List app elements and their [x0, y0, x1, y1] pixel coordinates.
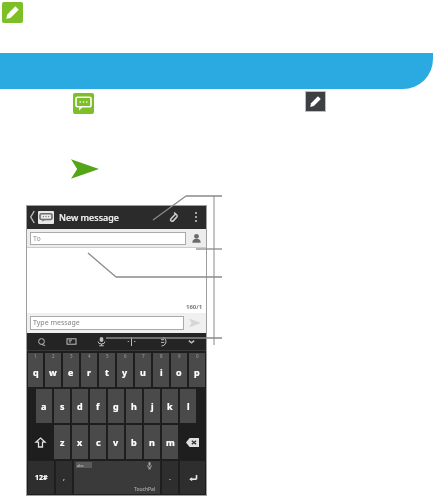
staticText: w: [49, 366, 57, 378]
staticText: f: [96, 400, 100, 412]
staticText: b: [131, 436, 137, 448]
button[interactable]: Keyboard tool 3: [116, 333, 146, 350]
staticText: x: [77, 436, 83, 448]
button[interactable]: s: [54, 389, 70, 423]
staticText: 9: [178, 353, 181, 359]
button[interactable]: 0: [189, 353, 205, 387]
button[interactable]: abc: [74, 461, 160, 494]
button[interactable]: Keyboard tool 0: [27, 333, 56, 350]
staticText: o: [176, 366, 182, 378]
staticText: 160/1: [186, 303, 203, 311]
button[interactable]: 2: [45, 353, 61, 387]
staticText: 3: [70, 353, 73, 359]
button[interactable]: Keyboard tool 4: [146, 333, 176, 350]
staticText: 7: [142, 353, 145, 359]
button[interactable]: b: [126, 425, 142, 459]
staticText: s: [60, 400, 65, 412]
staticText: 1: [34, 353, 37, 359]
button[interactable]: ,: [56, 461, 72, 494]
button[interactable]: Messaging: [73, 93, 94, 114]
button[interactable]: 12#: [28, 461, 54, 494]
staticText: z: [60, 436, 65, 448]
staticText: t: [105, 366, 109, 378]
staticText: abc: [77, 463, 84, 468]
staticText: 6: [124, 353, 127, 359]
staticText: d: [77, 400, 83, 412]
button[interactable]: m: [162, 425, 178, 459]
button[interactable]: 4: [81, 353, 97, 387]
staticText: q: [33, 366, 39, 378]
button[interactable]: Keyboard tool 5: [176, 333, 206, 350]
button[interactable]: To: [33, 232, 186, 245]
button[interactable]: g: [108, 389, 124, 423]
staticText: a: [41, 400, 47, 412]
staticText: ,: [63, 473, 65, 483]
button[interactable]: x: [72, 425, 88, 459]
staticText: y: [122, 366, 128, 378]
button[interactable]: j: [144, 389, 160, 423]
staticText: u: [140, 366, 146, 378]
button[interactable]: 7: [135, 353, 151, 387]
staticText: i: [160, 366, 163, 378]
button[interactable]: c: [90, 425, 106, 459]
button[interactable]: Type message: [33, 316, 184, 330]
button[interactable]: More options: [190, 211, 202, 223]
staticText: 4: [88, 353, 91, 359]
staticText: 12#: [35, 473, 48, 483]
button[interactable]: Send: [187, 316, 203, 330]
button[interactable]: h: [126, 389, 142, 423]
staticText: Type message: [33, 318, 80, 328]
button[interactable]: Attach: [166, 210, 180, 224]
button[interactable]: Keyboard tool 2: [86, 333, 116, 350]
button[interactable]: f: [90, 389, 106, 423]
button[interactable]: 8: [153, 353, 169, 387]
button[interactable]: Send: [71, 158, 99, 180]
staticText: TouchPal: [134, 486, 156, 493]
button[interactable]: Backspace: [180, 425, 205, 459]
button[interactable]: Shift: [28, 425, 52, 459]
staticText: 2: [52, 353, 55, 359]
staticText: 0: [196, 353, 199, 359]
button[interactable]: k: [162, 389, 178, 423]
button[interactable]: New message: [306, 92, 325, 111]
staticText: h: [131, 400, 137, 412]
staticText: m: [166, 436, 175, 448]
staticText: l: [187, 400, 190, 412]
button[interactable]: 9: [171, 353, 187, 387]
staticText: To: [33, 234, 41, 244]
staticText: r: [87, 366, 92, 378]
staticText: .: [169, 473, 171, 483]
button[interactable]: Compose: [2, 2, 23, 23]
staticText: p: [194, 366, 200, 378]
staticText: e: [68, 366, 74, 378]
button[interactable]: 3: [63, 353, 79, 387]
staticText: n: [149, 436, 155, 448]
button[interactable]: a: [36, 389, 52, 423]
staticText: j: [151, 400, 154, 412]
staticText: g: [113, 400, 119, 412]
button[interactable]: 1: [28, 353, 43, 387]
staticText: c: [96, 436, 101, 448]
button[interactable]: 6: [117, 353, 133, 387]
button[interactable]: v: [108, 425, 124, 459]
button[interactable]: l: [180, 389, 196, 423]
button[interactable]: 5: [99, 353, 115, 387]
button[interactable]: Contacts: [190, 232, 203, 245]
button[interactable]: Enter: [180, 461, 205, 494]
button[interactable]: Keyboard tool 1: [56, 333, 86, 350]
staticText: k: [167, 400, 173, 412]
staticText: 8: [160, 353, 163, 359]
staticText: 5: [106, 353, 109, 359]
button[interactable]: z: [54, 425, 70, 459]
button[interactable]: n: [144, 425, 160, 459]
staticText: v: [113, 436, 119, 448]
button[interactable]: .: [162, 461, 178, 494]
staticText: New message: [59, 211, 119, 223]
button[interactable]: d: [72, 389, 88, 423]
